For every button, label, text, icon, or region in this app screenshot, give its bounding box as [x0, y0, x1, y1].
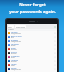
staticText: your passwords again. — [9, 9, 56, 15]
button[interactable]: Gmail — [7, 47, 57, 51]
staticText: user@mail.com — [11, 33, 21, 35]
button[interactable]: Facebook — [7, 43, 57, 47]
staticText: Dropbox — [11, 39, 18, 41]
staticText: Instagram — [11, 55, 20, 57]
button[interactable]: Bank of West — [7, 35, 57, 39]
button[interactable]: Instagram — [7, 55, 57, 59]
staticText: Search items — [16, 26, 26, 28]
button[interactable]: Amazon — [7, 31, 57, 35]
staticText: jdoe99 — [11, 45, 16, 47]
staticText: All items — [8, 29, 14, 31]
staticText: Amazon — [11, 31, 18, 33]
button[interactable]: Vault — [8, 25, 14, 28]
staticText: GitHub — [11, 51, 17, 53]
button[interactable]: PayPal — [7, 67, 57, 71]
button[interactable]: LinkedIn — [7, 59, 57, 63]
staticText: Gmail — [11, 47, 16, 49]
staticText: Securely store and sync all your logins. — [13, 17, 51, 20]
button[interactable]: Dropbox — [7, 39, 57, 43]
staticText: jdoe — [11, 37, 14, 39]
staticText: Vault — [8, 26, 12, 28]
staticText: Bank of West — [11, 35, 22, 37]
button[interactable]: Search items — [15, 25, 26, 28]
staticText: john.doe — [11, 49, 17, 51]
staticText: Netflix — [11, 63, 17, 65]
staticText: Never forget — [19, 2, 46, 8]
staticText: johnd — [11, 57, 15, 59]
staticText: Facebook — [11, 43, 19, 45]
staticText: PayPal — [11, 67, 17, 69]
button[interactable]: Netflix — [7, 63, 57, 67]
staticText: family — [11, 65, 15, 67]
staticText: jdoe-dev — [11, 53, 17, 55]
staticText: john.doe — [11, 61, 17, 63]
staticText: j.doe@mail.com — [11, 69, 22, 71]
staticText: j.doe@mail.com — [11, 41, 22, 43]
button[interactable]: GitHub — [7, 51, 57, 55]
staticText: LinkedIn — [11, 59, 19, 61]
